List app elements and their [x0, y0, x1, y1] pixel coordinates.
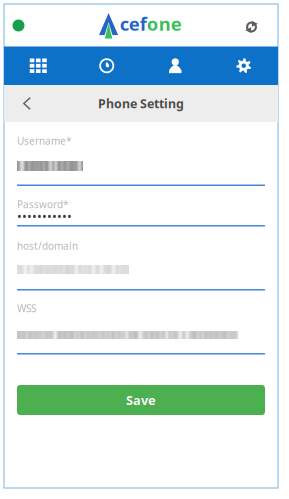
staticText: Save — [126, 391, 156, 409]
button[interactable]: Back — [13, 85, 41, 122]
staticText: Password* — [17, 197, 69, 211]
staticText: ••••••••••• — [17, 207, 72, 225]
staticText: cef — [120, 11, 147, 36]
staticText: Phone Setting — [98, 95, 184, 112]
staticText: one — [147, 11, 182, 36]
button[interactable]: Refresh — [239, 15, 263, 39]
button[interactable]: Settings — [209, 46, 278, 85]
staticText: host/domain — [17, 239, 78, 253]
staticText: WSS — [17, 301, 36, 315]
button[interactable]: Recents — [72, 46, 141, 85]
button[interactable]: Contacts — [141, 46, 209, 85]
button[interactable]: Keypad — [4, 46, 72, 85]
staticText: Username* — [17, 134, 72, 148]
button[interactable]: Save — [17, 385, 265, 415]
